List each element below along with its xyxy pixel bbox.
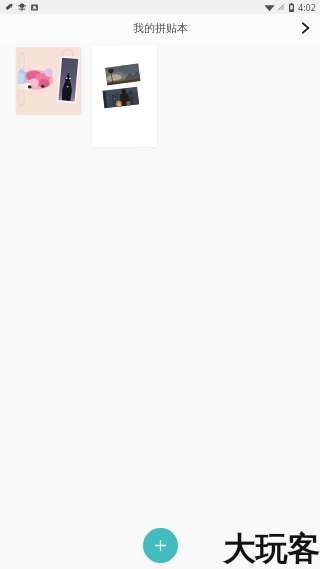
staticText: 4:02: [298, 1, 316, 13]
staticText: 我的拼贴本: [133, 21, 188, 35]
staticText: 大玩客: [223, 529, 319, 569]
button[interactable]: [92, 46, 157, 147]
button[interactable]: Add: [143, 528, 178, 563]
button[interactable]: [16, 47, 81, 114]
button[interactable]: Next: [292, 15, 318, 41]
